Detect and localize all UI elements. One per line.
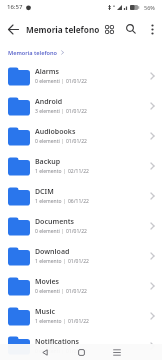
staticText: 01/01/22: [68, 318, 89, 325]
button[interactable]: [30, 344, 60, 360]
button[interactable]: Android: [0, 91, 162, 121]
staticText: |: [60, 138, 66, 145]
button[interactable]: Download: [0, 241, 162, 271]
staticText: Audiobooks: [35, 127, 76, 137]
button[interactable]: [100, 14, 118, 44]
staticText: 1 elemento: [35, 318, 62, 325]
button[interactable]: Backup: [0, 151, 162, 181]
staticText: 3 elementi: [35, 108, 60, 115]
staticText: 01/01/22: [66, 228, 87, 235]
staticText: Notifications: [35, 337, 79, 347]
staticText: |: [62, 168, 68, 175]
staticText: Alarms: [35, 67, 59, 77]
button[interactable]: Documents: [0, 211, 162, 241]
staticText: Android: [35, 97, 63, 107]
staticText: 01/01/22: [66, 138, 87, 145]
staticText: 0 elementi: [35, 228, 60, 235]
staticText: 06/11/22: [68, 198, 89, 205]
staticText: Backup: [35, 157, 61, 167]
staticText: Music: [35, 307, 55, 317]
staticText: 56%: [144, 4, 155, 11]
button[interactable]: DCIM: [0, 181, 162, 211]
staticText: Movies: [35, 277, 60, 287]
button[interactable]: Notifications: [0, 331, 162, 360]
staticText: 0 elementi: [35, 348, 60, 355]
button[interactable]: Alarms: [0, 61, 162, 91]
staticText: 1 elemento: [35, 258, 62, 265]
button[interactable]: Memoria telefono: [8, 49, 57, 57]
staticText: |: [62, 258, 68, 265]
staticText: |: [62, 318, 68, 325]
button[interactable]: Music: [0, 301, 162, 331]
button[interactable]: [102, 344, 132, 360]
button[interactable]: Audiobooks: [0, 121, 162, 151]
staticText: 1 elemento: [35, 198, 62, 205]
button[interactable]: [122, 14, 140, 44]
staticText: 02/11/22: [68, 168, 89, 175]
staticText: |: [60, 108, 66, 115]
staticText: 01/01/22: [66, 108, 87, 115]
staticText: 01/01/22: [68, 258, 89, 265]
staticText: 01/01/22: [66, 288, 87, 295]
staticText: Documents: [35, 217, 74, 227]
staticText: Memoria telefono: [8, 49, 57, 57]
staticText: |: [60, 288, 66, 295]
staticText: |: [60, 78, 66, 85]
staticText: 0 elementi: [35, 288, 60, 295]
staticText: DCIM: [35, 187, 54, 197]
staticText: 0 elementi: [35, 78, 60, 85]
staticText: 0 elementi: [35, 138, 60, 145]
staticText: Memoria telefono: [26, 24, 100, 35]
button[interactable]: [0, 14, 26, 44]
button[interactable]: Movies: [0, 271, 162, 301]
staticText: 1 elemento: [35, 168, 62, 175]
staticText: Download: [35, 247, 70, 257]
staticText: |: [60, 228, 66, 235]
staticText: 01/01/22: [66, 78, 87, 85]
button[interactable]: [66, 344, 96, 360]
staticText: |: [62, 198, 68, 205]
staticText: 16:57: [7, 3, 23, 11]
staticText: 01/01/22: [66, 348, 87, 355]
button[interactable]: [142, 14, 162, 44]
